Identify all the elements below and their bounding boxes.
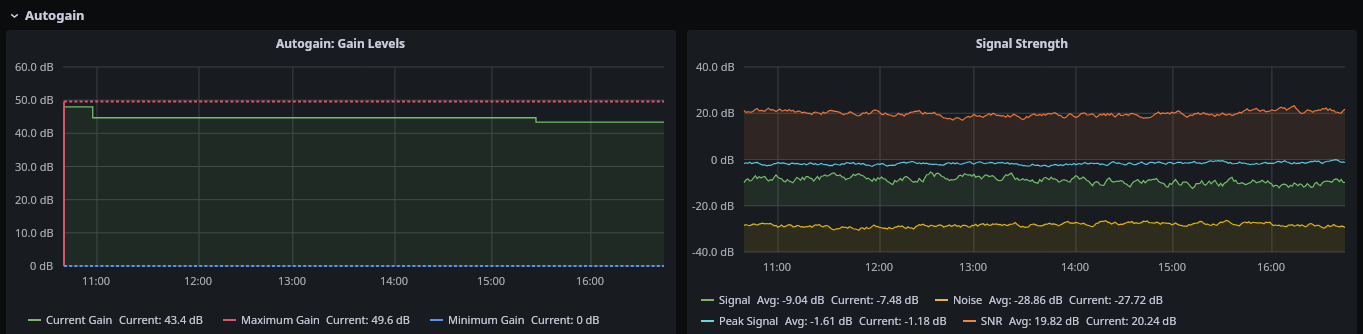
staticText: Signal Strength [976, 35, 1068, 51]
staticText: Autogain [25, 6, 85, 24]
staticText: Avg: -1.61 dB [785, 313, 853, 328]
button[interactable]: Noise [935, 292, 1163, 307]
staticText: Current: 20.24 dB [1086, 313, 1177, 328]
button[interactable]: Signal [701, 292, 919, 307]
staticText: 14:00 [1061, 259, 1090, 274]
staticText: Maximum Gain [241, 312, 320, 327]
staticText: Current: 43.4 dB [119, 312, 203, 327]
staticText: 20.0 dB [15, 192, 54, 207]
staticText: Noise [953, 292, 983, 307]
staticText: Current: -27.72 dB [1069, 292, 1163, 307]
staticText: 60.0 dB [15, 59, 54, 74]
staticText: 50.0 dB [15, 92, 54, 107]
staticText: 11:00 [82, 273, 111, 288]
staticText: 13:00 [959, 259, 988, 274]
button[interactable]: SNR [963, 313, 1177, 328]
staticText: 15:00 [477, 273, 506, 288]
button[interactable]: Peak Signal [701, 313, 947, 328]
staticText: Minimum Gain [448, 312, 525, 327]
other: Collapse Autogain row [9, 10, 20, 21]
staticText: -20.0 dB [692, 198, 735, 213]
staticText: 30.0 dB [15, 159, 54, 174]
staticText: Current: 49.6 dB [326, 312, 410, 327]
staticText: SNR [981, 313, 1003, 328]
staticText: Signal [719, 292, 751, 307]
staticText: 16:00 [1257, 259, 1286, 274]
staticText: 20.0 dB [696, 105, 735, 120]
staticText: Avg: -28.86 dB [989, 292, 1063, 307]
staticText: Current: 0 dB [531, 312, 600, 327]
staticText: 11:00 [763, 259, 792, 274]
staticText: 13:00 [278, 273, 307, 288]
staticText: 0 dB [30, 258, 54, 273]
button[interactable]: Maximum Gain [223, 312, 410, 327]
staticText: 12:00 [184, 273, 213, 288]
staticText: 12:00 [865, 259, 894, 274]
staticText: Peak Signal [719, 313, 779, 328]
staticText: -40.0 dB [692, 244, 735, 259]
staticText: 40.0 dB [696, 59, 735, 74]
staticText: Autogain: Gain Levels [276, 35, 406, 51]
staticText: Current: -1.18 dB [859, 313, 947, 328]
button[interactable]: Minimum Gain [430, 312, 600, 327]
staticText: Avg: -9.04 dB [757, 292, 825, 307]
staticText: 14:00 [380, 273, 409, 288]
staticText: Current Gain [46, 312, 113, 327]
staticText: Current: -7.48 dB [831, 292, 919, 307]
button[interactable]: Autogain: Gain Levels [6, 30, 676, 334]
staticText: 0 dB [711, 152, 735, 167]
button[interactable]: Signal Strength [687, 30, 1357, 334]
button[interactable]: Current Gain [28, 312, 203, 327]
staticText: 10.0 dB [15, 225, 54, 240]
staticText: 15:00 [1158, 259, 1187, 274]
staticText: 40.0 dB [15, 125, 54, 140]
staticText: 16:00 [576, 273, 605, 288]
button[interactable]: Collapse Autogain row [0, 0, 1363, 30]
staticText: Avg: 19.82 dB [1009, 313, 1080, 328]
